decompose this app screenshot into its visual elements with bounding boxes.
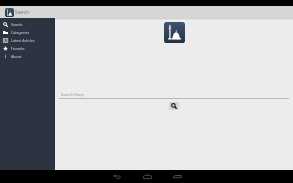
staticText: Latest Articles — [11, 38, 35, 43]
button[interactable]: Latest Articles — [0, 36, 55, 44]
button[interactable]: Favorite — [0, 44, 55, 52]
staticText: Categories — [11, 30, 30, 35]
staticText: Search Story — [61, 92, 84, 97]
staticText: About — [11, 54, 22, 59]
button[interactable]: Recent apps — [162, 170, 192, 183]
staticText: Search — [11, 22, 23, 27]
button[interactable]: Search — [169, 102, 179, 110]
button[interactable]: Back — [102, 170, 132, 183]
staticText: Search — [15, 9, 29, 15]
button[interactable]: Open navigation drawer — [5, 8, 14, 17]
button[interactable]: Home — [132, 170, 162, 183]
staticText: Favorite — [11, 46, 25, 51]
button[interactable]: Categories — [0, 28, 55, 36]
button[interactable]: About — [0, 52, 55, 60]
button[interactable]: Search — [0, 20, 55, 28]
